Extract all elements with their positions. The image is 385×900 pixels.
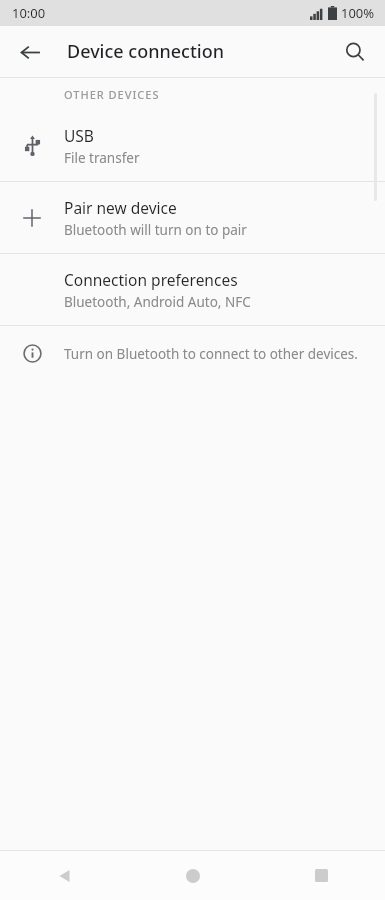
staticText: Pair new device — [64, 197, 177, 218]
staticText: USB — [64, 125, 94, 146]
button[interactable]: Recent apps — [257, 851, 385, 900]
button[interactable]: Back — [0, 851, 129, 900]
staticText: Bluetooth, Android Auto, NFC — [64, 293, 251, 311]
button[interactable]: Connection preferences — [0, 254, 385, 325]
button[interactable]: Pair new device — [0, 182, 385, 253]
staticText: 100% — [341, 4, 375, 22]
staticText: 10:00 — [12, 4, 46, 22]
staticText: Connection preferences — [64, 269, 238, 290]
button[interactable]: Search — [333, 30, 377, 74]
button[interactable]: USB — [0, 110, 385, 181]
staticText: OTHER DEVICES — [64, 87, 160, 102]
staticText: File transfer — [64, 149, 140, 167]
staticText: Device connection — [67, 39, 224, 64]
staticText: Bluetooth will turn on to pair — [64, 221, 247, 239]
staticText: Turn on Bluetooth to connect to other de… — [64, 345, 369, 363]
button[interactable]: Back — [8, 30, 52, 74]
button[interactable]: Home — [129, 851, 257, 900]
